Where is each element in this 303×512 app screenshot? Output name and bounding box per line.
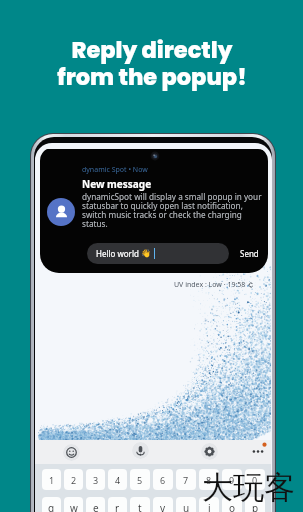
- button[interactable]: o: [222, 497, 242, 512]
- button[interactable]: Hello world: [87, 243, 229, 264]
- staticText: 5: [137, 474, 143, 486]
- button[interactable]: 8: [199, 469, 219, 490]
- button[interactable]: Keyboard settings: [201, 443, 218, 460]
- staticText: 👋: [141, 249, 151, 258]
- button[interactable]: r: [108, 497, 127, 512]
- staticText: t: [138, 501, 142, 512]
- button[interactable]: dynamic Spot • Now: [40, 149, 268, 273]
- staticText: p: [252, 501, 259, 512]
- staticText: u: [183, 501, 190, 512]
- button[interactable]: e: [86, 497, 105, 512]
- staticText: w: [70, 501, 78, 512]
- button[interactable]: i: [199, 497, 219, 512]
- button[interactable]: Emoji: [63, 444, 80, 461]
- button[interactable]: More options: [249, 442, 267, 460]
- button[interactable]: 2: [64, 469, 83, 490]
- button[interactable]: q: [42, 497, 61, 512]
- button[interactable]: 7: [176, 469, 196, 490]
- staticText: Hello world: [96, 248, 141, 259]
- staticText: UV index : Low · 19:58: [174, 280, 246, 290]
- staticText: 2: [71, 474, 77, 486]
- staticText: 大玩客: [202, 468, 295, 507]
- staticText: e: [93, 501, 99, 512]
- staticText: 1: [49, 474, 55, 486]
- staticText: New message: [82, 177, 152, 191]
- staticText: Send: [240, 248, 259, 259]
- staticText: r: [115, 501, 120, 512]
- staticText: y: [160, 501, 166, 512]
- button[interactable]: 4: [108, 469, 127, 490]
- button[interactable]: Voice input: [132, 442, 149, 459]
- staticText: Reply directly from the popup!: [57, 34, 247, 93]
- staticText: 3: [93, 474, 99, 486]
- staticText: 9: [229, 474, 235, 486]
- staticText: q: [48, 501, 55, 512]
- staticText: 6: [160, 474, 166, 486]
- staticText: dynamicSpot will display a small popup i…: [82, 191, 263, 230]
- button[interactable]: 0: [245, 469, 265, 490]
- button[interactable]: y: [153, 497, 173, 512]
- button[interactable]: 6: [153, 469, 173, 490]
- staticText: o: [229, 501, 236, 512]
- button[interactable]: 9: [222, 469, 242, 490]
- button[interactable]: 3: [86, 469, 105, 490]
- staticText: i: [208, 501, 211, 512]
- staticText: 4: [115, 474, 121, 486]
- staticText: 0: [252, 474, 258, 486]
- staticText: 8: [206, 474, 212, 486]
- button[interactable]: w: [64, 497, 83, 512]
- button[interactable]: 5: [130, 469, 150, 490]
- button[interactable]: u: [176, 497, 196, 512]
- button[interactable]: p: [245, 497, 265, 512]
- staticText: 7: [183, 474, 189, 486]
- button[interactable]: 1: [42, 469, 61, 490]
- button[interactable]: Send: [233, 243, 265, 264]
- button[interactable]: t: [130, 497, 150, 512]
- staticText: dynamic Spot • Now: [82, 165, 148, 175]
